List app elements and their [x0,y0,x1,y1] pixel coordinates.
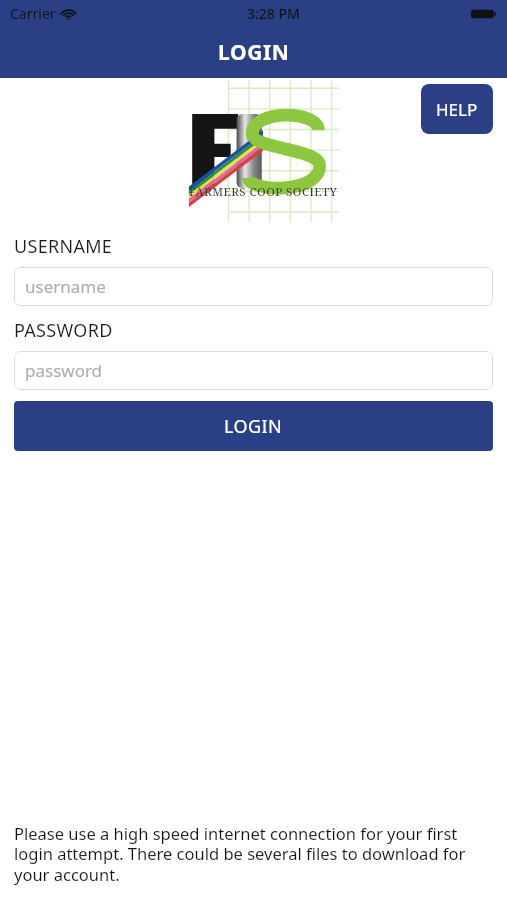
staticText: USERNAME [14,234,113,259]
staticText: LOGIN [218,38,290,67]
button[interactable]: username [14,267,493,306]
staticText: HELP [436,98,478,121]
staticText: Carrier [10,4,56,23]
staticText: FARMERS COOP SOCIETY [189,184,338,200]
button[interactable]: HELP [421,84,493,134]
staticText: 3:28 PM [247,4,300,23]
button[interactable]: password [14,351,493,390]
staticText: PASSWORD [14,318,113,343]
staticText: username [25,275,106,298]
staticText: LOGIN [224,414,283,439]
button[interactable]: LOGIN [14,401,493,451]
staticText: password [25,359,103,382]
staticText: Please use a high speed internet connect… [14,822,485,886]
